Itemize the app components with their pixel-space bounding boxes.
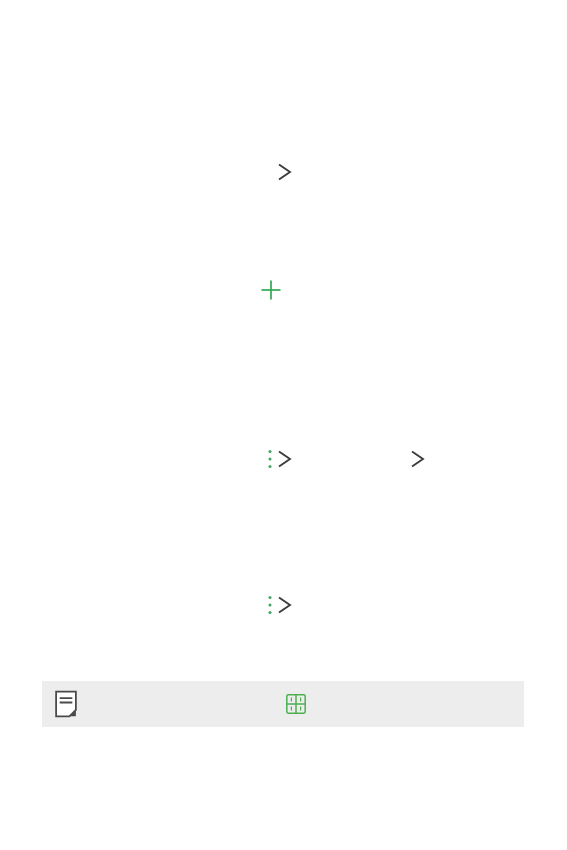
- button[interactable]: Expand: [406, 448, 428, 470]
- button[interactable]: Add: [257, 276, 285, 304]
- button[interactable]: Notes: [48, 686, 84, 722]
- button[interactable]: More options: [264, 447, 275, 471]
- button[interactable]: Expand: [273, 594, 295, 616]
- button[interactable]: Expand: [273, 448, 295, 470]
- button[interactable]: More options: [264, 593, 275, 617]
- button[interactable]: Expand: [273, 161, 295, 183]
- button[interactable]: Grid view: [278, 686, 314, 722]
